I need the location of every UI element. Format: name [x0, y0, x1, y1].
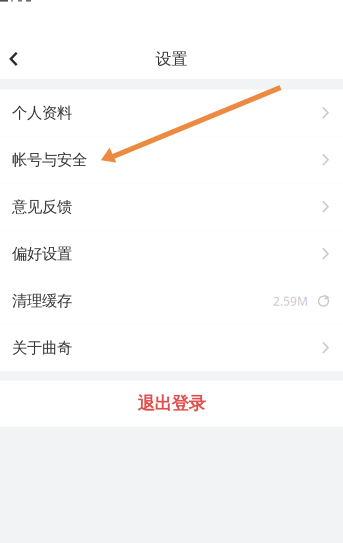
- button[interactable]: 退出登录: [0, 380, 343, 426]
- button[interactable]: 个人资料: [0, 89, 343, 136]
- staticText: 个人资料: [12, 103, 72, 123]
- button[interactable]: 关于曲奇: [0, 324, 343, 371]
- button[interactable]: Back: [0, 44, 28, 74]
- staticText: 意见反馈: [12, 197, 72, 217]
- button[interactable]: 偏好设置: [0, 230, 343, 277]
- staticText: 关于曲奇: [12, 338, 72, 358]
- staticText: 退出登录: [137, 393, 205, 414]
- staticText: 清理缓存: [12, 291, 72, 311]
- button[interactable]: 意见反馈: [0, 183, 343, 230]
- button[interactable]: 帐号与安全: [0, 136, 343, 183]
- staticText: 偏好设置: [12, 244, 72, 264]
- button[interactable]: 清理缓存: [0, 277, 343, 324]
- staticText: 帐号与安全: [12, 150, 87, 170]
- staticText: 设置: [155, 49, 187, 69]
- staticText: 2.59M: [273, 293, 308, 309]
